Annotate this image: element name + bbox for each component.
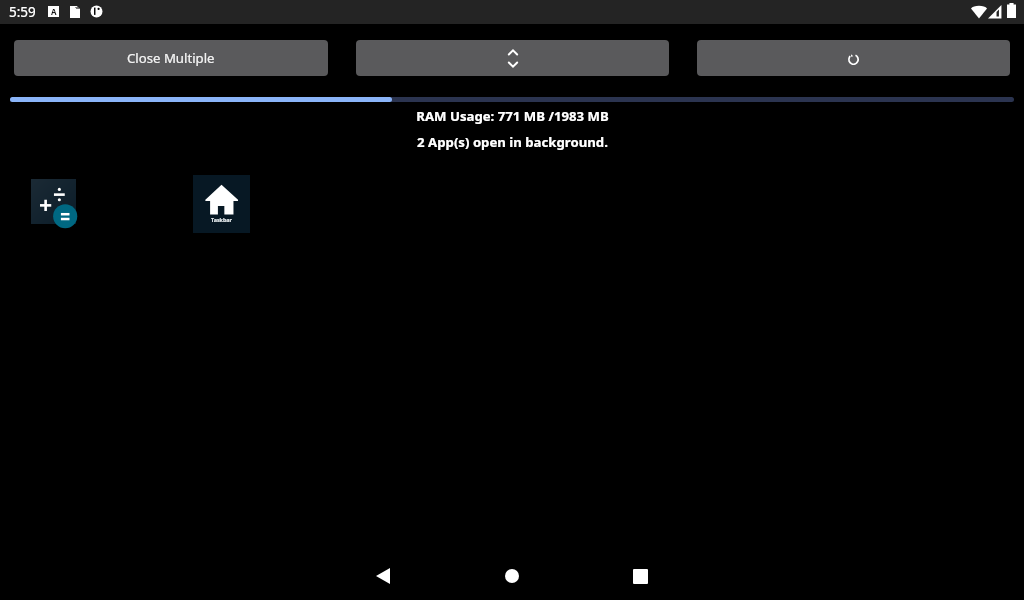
button[interactable]: Sort order xyxy=(356,40,669,76)
staticText: Close Multiple xyxy=(127,49,215,67)
button[interactable]: Refresh xyxy=(697,40,1010,76)
staticText: Taskbar xyxy=(211,216,233,223)
staticText: 5:59 xyxy=(9,3,36,21)
button[interactable]: Taskbar xyxy=(193,175,250,233)
staticText: RAM Usage: 771 MB /1983 MB xyxy=(416,107,609,125)
button[interactable]: Recent apps xyxy=(616,552,664,600)
staticText: 2 App(s) open in background. xyxy=(417,133,608,151)
button[interactable]: Calculator xyxy=(31,179,76,224)
staticText: A xyxy=(51,6,57,17)
button[interactable]: Close Multiple xyxy=(14,40,328,76)
button[interactable]: Home xyxy=(488,552,536,600)
button[interactable]: Back xyxy=(359,552,407,600)
